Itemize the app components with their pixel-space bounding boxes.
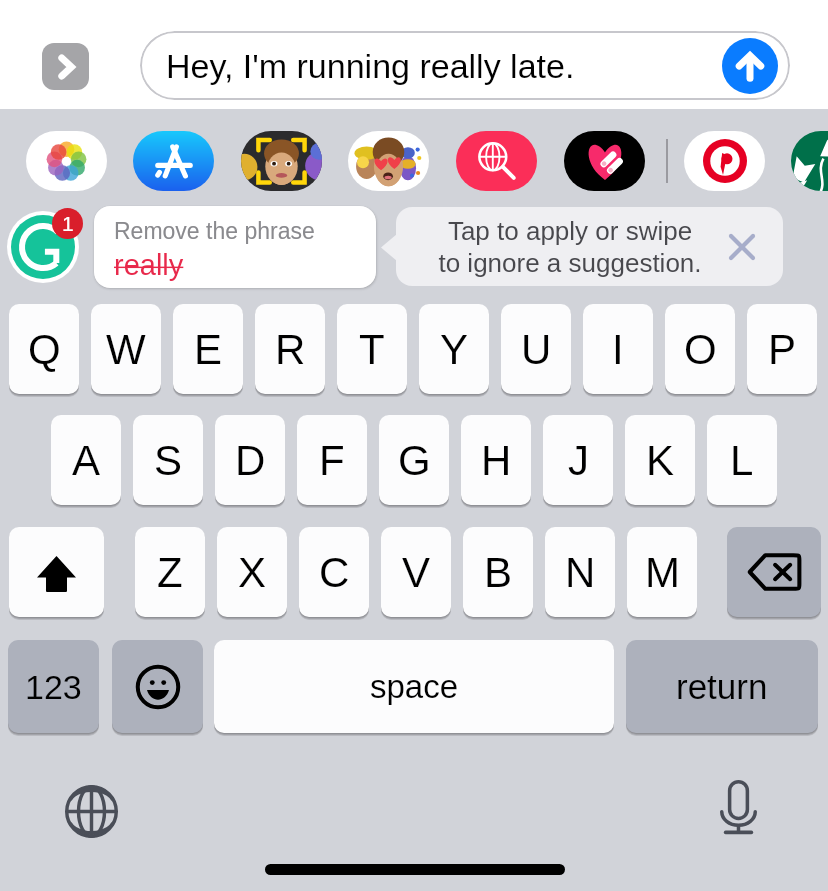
- staticText: D: [235, 437, 266, 484]
- button[interactable]: space: [214, 640, 614, 733]
- button[interactable]: J: [543, 415, 613, 505]
- button[interactable]: R: [255, 304, 325, 394]
- button[interactable]: K: [625, 415, 695, 505]
- button[interactable]: Tap to apply or swipe to ignore a sugges…: [396, 207, 783, 286]
- staticText: 123: [25, 668, 82, 706]
- staticText: E: [194, 326, 223, 373]
- button[interactable]: 123: [8, 640, 99, 733]
- staticText: O: [684, 326, 717, 373]
- button[interactable]: Hey, I'm running really late.: [140, 31, 790, 100]
- staticText: K: [646, 437, 675, 484]
- button[interactable]: W: [91, 304, 161, 394]
- button[interactable]: O: [665, 304, 735, 394]
- button[interactable]: Show apps: [42, 43, 89, 90]
- staticText: J: [568, 437, 589, 484]
- button[interactable]: Pinterest: [684, 131, 765, 191]
- button[interactable]: Z: [135, 527, 205, 617]
- staticText: Hey, I'm running really late.: [166, 47, 575, 85]
- staticText: Tap to apply or swipe to ignore a sugges…: [438, 216, 702, 278]
- staticText: P: [768, 326, 797, 373]
- staticText: Q: [28, 326, 61, 373]
- staticText: R: [275, 326, 306, 373]
- button[interactable]: Memoji stickers: [241, 131, 322, 191]
- button[interactable]: Send: [722, 38, 778, 94]
- staticText: C: [319, 549, 350, 596]
- button[interactable]: T: [337, 304, 407, 394]
- staticText: M: [645, 549, 680, 596]
- staticText: A: [72, 437, 101, 484]
- button[interactable]: F: [297, 415, 367, 505]
- staticText: G: [398, 437, 431, 484]
- staticText: Y: [440, 326, 469, 373]
- staticText: space: [370, 668, 459, 705]
- button[interactable]: Dismiss: [723, 228, 761, 266]
- button[interactable]: Emoji: [112, 640, 203, 733]
- button[interactable]: V: [381, 527, 451, 617]
- staticText: X: [238, 549, 267, 596]
- button[interactable]: Dictation: [704, 773, 772, 841]
- button[interactable]: #images: [456, 131, 537, 191]
- staticText: I: [612, 326, 624, 373]
- staticText: V: [402, 549, 431, 596]
- button[interactable]: E: [173, 304, 243, 394]
- button[interactable]: A: [51, 415, 121, 505]
- button[interactable]: M: [627, 527, 697, 617]
- staticText: T: [359, 326, 385, 373]
- staticText: N: [565, 549, 596, 596]
- staticText: W: [106, 326, 146, 373]
- button[interactable]: Photos: [26, 131, 107, 191]
- button[interactable]: I: [583, 304, 653, 394]
- staticText: L: [730, 437, 754, 484]
- button[interactable]: Apple Music: [564, 131, 645, 191]
- button[interactable]: Remove the phrase: [94, 206, 376, 288]
- staticText: H: [481, 437, 512, 484]
- button[interactable]: C: [299, 527, 369, 617]
- button[interactable]: N: [545, 527, 615, 617]
- staticText: S: [154, 437, 183, 484]
- button[interactable]: P: [747, 304, 817, 394]
- button[interactable]: H: [461, 415, 531, 505]
- staticText: F: [319, 437, 345, 484]
- button[interactable]: App Store: [133, 131, 214, 191]
- staticText: B: [484, 549, 513, 596]
- staticText: Remove the phrase: [114, 218, 315, 244]
- staticText: Z: [157, 549, 183, 596]
- button[interactable]: Starbucks: [791, 131, 828, 191]
- button[interactable]: return: [626, 640, 818, 733]
- staticText: U: [521, 326, 552, 373]
- button[interactable]: Shift: [9, 527, 104, 617]
- button[interactable]: Next keyboard: [57, 777, 125, 845]
- button[interactable]: Y: [419, 304, 489, 394]
- button[interactable]: B: [463, 527, 533, 617]
- staticText: 1: [62, 212, 74, 235]
- button[interactable]: U: [501, 304, 571, 394]
- button[interactable]: Q: [9, 304, 79, 394]
- staticText: really: [114, 249, 184, 281]
- button[interactable]: X: [217, 527, 287, 617]
- button[interactable]: D: [215, 415, 285, 505]
- button[interactable]: G: [379, 415, 449, 505]
- button[interactable]: S: [133, 415, 203, 505]
- button[interactable]: Delete: [727, 527, 821, 617]
- button[interactable]: L: [707, 415, 777, 505]
- staticText: return: [676, 667, 768, 706]
- button[interactable]: Memoji: [348, 131, 429, 191]
